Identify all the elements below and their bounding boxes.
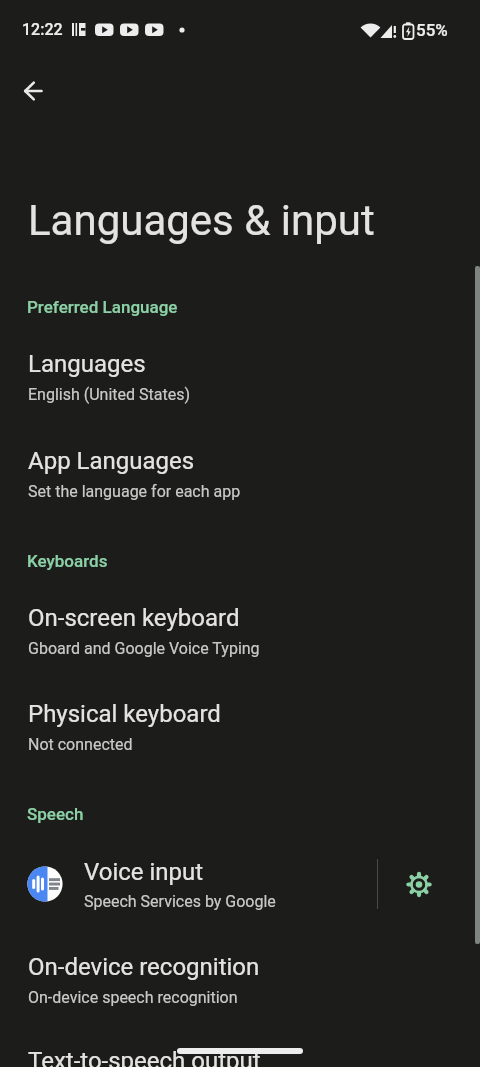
- staticText: Gboard and Google Voice Typing: [28, 639, 260, 658]
- staticText: Languages & input: [28, 196, 375, 245]
- button[interactable]: On-screen keyboard: [0, 584, 480, 680]
- staticText: On-device recognition: [28, 953, 260, 981]
- staticText: 55%: [416, 20, 448, 40]
- staticText: English (United States): [28, 385, 191, 404]
- staticText: On-screen keyboard: [28, 604, 240, 632]
- button[interactable]: Languages: [0, 330, 480, 426]
- staticText: Text-to-speech output: [28, 1047, 261, 1067]
- staticText: Set the language for each app: [28, 482, 241, 501]
- staticText: On-device speech recognition: [28, 988, 238, 1007]
- staticText: Voice input: [84, 858, 204, 886]
- staticText: Languages: [28, 350, 146, 378]
- staticText: Not connected: [28, 735, 133, 754]
- staticText: Preferred Language: [27, 297, 178, 317]
- staticText: Physical keyboard: [28, 700, 221, 728]
- staticText: Speech: [27, 804, 84, 824]
- button[interactable]: Physical keyboard: [0, 680, 480, 776]
- button[interactable]: [391, 856, 447, 912]
- button[interactable]: On-device recognition: [0, 933, 480, 1029]
- button[interactable]: Text-to-speech output: [0, 1027, 480, 1067]
- staticText: App Languages: [28, 447, 195, 475]
- button[interactable]: [9, 67, 57, 115]
- button[interactable]: App Languages: [0, 427, 480, 523]
- staticText: 12:22: [22, 20, 63, 39]
- staticText: Speech Services by Google: [84, 892, 276, 911]
- button[interactable]: Voice input: [0, 838, 376, 930]
- staticText: Keyboards: [27, 551, 108, 571]
